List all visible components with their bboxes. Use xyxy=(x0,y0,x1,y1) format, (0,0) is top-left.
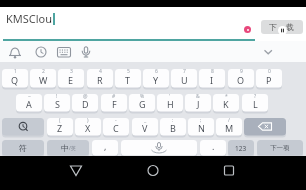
staticText: D xyxy=(82,98,89,110)
button[interactable] xyxy=(32,43,50,63)
staticText: 7 xyxy=(183,68,186,75)
button[interactable] xyxy=(141,160,165,184)
button[interactable]: N xyxy=(188,118,214,136)
staticText: / xyxy=(228,117,230,124)
button[interactable]: E xyxy=(58,69,84,88)
button[interactable] xyxy=(121,140,197,156)
staticText: T xyxy=(125,74,131,86)
staticText: /英 xyxy=(69,145,76,152)
staticText: 123 xyxy=(235,144,247,153)
staticText: 3 xyxy=(70,68,73,75)
button[interactable]: 123 xyxy=(228,140,254,156)
button[interactable]: Z xyxy=(47,118,73,136)
staticText: P xyxy=(266,74,272,86)
staticText: ' xyxy=(169,93,171,100)
staticText: 下 xyxy=(269,22,277,32)
button[interactable]: C xyxy=(103,118,129,136)
staticText: 6 xyxy=(155,68,158,75)
staticText: A xyxy=(26,98,32,110)
staticText: ! xyxy=(56,93,58,100)
button[interactable] xyxy=(55,43,73,63)
staticText: ; xyxy=(200,117,202,124)
staticText: M xyxy=(225,122,234,134)
button[interactable]: D xyxy=(72,94,98,112)
staticText: J xyxy=(197,98,200,110)
staticText: ? xyxy=(254,93,257,100)
button[interactable]: S xyxy=(44,94,70,112)
button[interactable] xyxy=(259,43,277,63)
staticText: 1 xyxy=(14,68,17,75)
staticText: L xyxy=(253,98,258,110)
staticText: ( xyxy=(59,117,61,124)
staticText: Q xyxy=(11,74,19,86)
button[interactable]: L xyxy=(242,94,268,112)
button[interactable] xyxy=(217,160,241,184)
button[interactable] xyxy=(6,43,24,63)
staticText: F xyxy=(112,98,117,110)
staticText: V xyxy=(142,122,148,134)
staticText: O xyxy=(237,74,245,86)
staticText: . xyxy=(212,140,215,152)
staticText: K xyxy=(223,98,229,110)
button[interactable] xyxy=(244,26,251,33)
button[interactable]: W xyxy=(30,69,56,88)
staticText: 2 xyxy=(42,68,45,75)
button[interactable]: Q xyxy=(2,69,28,88)
button[interactable]: P xyxy=(256,69,282,88)
button[interactable] xyxy=(2,118,44,136)
staticText: # xyxy=(112,93,116,100)
button[interactable]: I xyxy=(199,69,225,88)
staticText: @ xyxy=(83,93,88,100)
staticText: : xyxy=(172,117,174,124)
staticText: 9 xyxy=(240,68,243,75)
button[interactable]: J xyxy=(185,94,211,112)
button[interactable]: 符 xyxy=(2,140,44,156)
staticText: ) xyxy=(87,117,89,124)
staticText: X xyxy=(85,122,91,134)
button[interactable]: B xyxy=(160,118,186,136)
staticText: 下一项 xyxy=(270,144,290,152)
staticText: H xyxy=(167,98,174,110)
button[interactable] xyxy=(77,43,95,63)
staticText: C xyxy=(113,122,119,134)
staticText: R xyxy=(97,74,103,86)
button[interactable]: T xyxy=(115,69,141,88)
button[interactable]: . xyxy=(200,140,226,156)
button[interactable]: G xyxy=(129,94,155,112)
button[interactable]: X xyxy=(75,118,101,136)
button[interactable]: M xyxy=(216,118,242,136)
staticText: W xyxy=(39,74,48,86)
staticText: 5 xyxy=(127,68,130,75)
staticText: & xyxy=(196,93,200,100)
staticText: I xyxy=(210,74,214,86)
staticText: 中 xyxy=(61,143,69,153)
staticText: * xyxy=(225,93,228,100)
button[interactable]: 下 xyxy=(261,20,303,34)
button[interactable]: , xyxy=(92,140,118,156)
staticText: KMSClou xyxy=(6,11,53,26)
button[interactable]: H xyxy=(157,94,183,112)
button[interactable]: 中 xyxy=(47,140,89,156)
button[interactable]: K xyxy=(213,94,239,112)
staticText: Z xyxy=(57,122,63,134)
staticText: 4 xyxy=(99,68,102,75)
button[interactable] xyxy=(244,118,286,136)
button[interactable]: F xyxy=(101,94,127,112)
button[interactable]: O xyxy=(228,69,254,88)
button[interactable]: U xyxy=(171,69,197,88)
staticText: 8 xyxy=(211,68,214,75)
staticText: 0 xyxy=(268,68,271,75)
staticText: E xyxy=(68,74,74,86)
staticText: 载 xyxy=(286,22,294,32)
button[interactable] xyxy=(64,160,88,184)
button[interactable]: 下一项 xyxy=(257,140,303,156)
staticText: U xyxy=(181,74,188,86)
staticText: ~ xyxy=(28,93,31,100)
staticText: - xyxy=(115,117,117,124)
button[interactable]: V xyxy=(132,118,158,136)
staticText: B xyxy=(170,122,176,134)
button[interactable]: A xyxy=(16,94,42,112)
button[interactable]: R xyxy=(87,69,113,88)
button[interactable]: Y xyxy=(143,69,169,88)
staticText: N xyxy=(198,122,205,134)
